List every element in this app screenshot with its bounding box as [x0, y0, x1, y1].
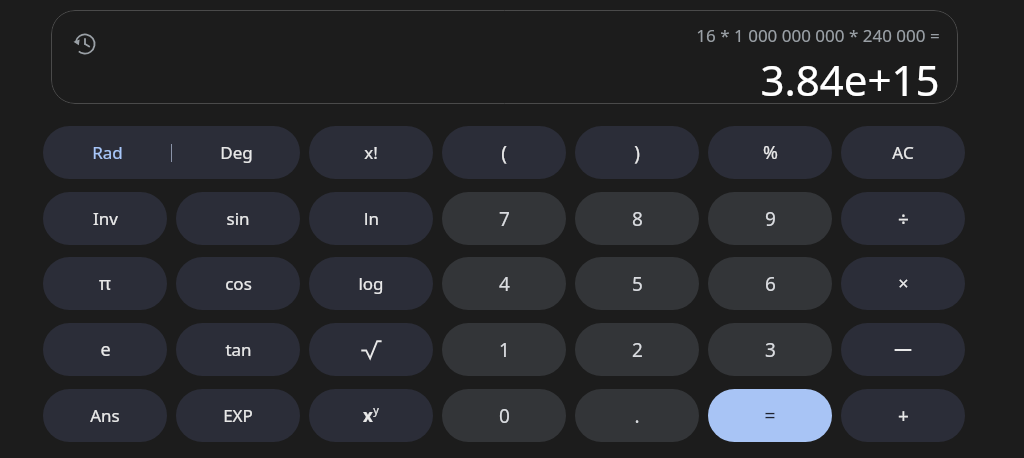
staticText: 3.84e+15 — [760, 51, 940, 104]
staticText: Ans — [90, 404, 120, 427]
button[interactable]: 0 — [442, 389, 566, 442]
button[interactable]: Rad — [43, 126, 171, 179]
staticText: 16 * 1 000 000 000 * 240 000 = — [696, 24, 940, 47]
button[interactable]: = — [708, 389, 832, 442]
staticText: log — [358, 272, 384, 295]
staticText: 4 — [499, 271, 510, 297]
button[interactable]: e — [43, 323, 167, 376]
staticText: 9 — [765, 206, 776, 232]
staticText: 8 — [632, 206, 643, 232]
button[interactable]: AC — [841, 126, 965, 179]
staticText: 0 — [499, 403, 510, 429]
button[interactable]: 6 — [708, 257, 832, 310]
button[interactable]: sin — [176, 192, 300, 245]
staticText: AC — [892, 141, 914, 164]
button[interactable]: 9 — [708, 192, 832, 245]
button[interactable]: tan — [176, 323, 300, 376]
staticText: ÷ — [898, 206, 909, 232]
button[interactable]: % — [708, 126, 832, 179]
button[interactable]: + — [841, 389, 965, 442]
button[interactable]: 5 — [575, 257, 699, 310]
staticText: Inv — [93, 207, 118, 230]
button[interactable]: log — [309, 257, 433, 310]
button[interactable] — [841, 323, 965, 376]
staticText: e — [100, 337, 111, 362]
staticText: EXP — [223, 404, 253, 427]
staticText: 3 — [765, 337, 776, 363]
staticText: × — [898, 271, 909, 296]
button[interactable]: EXP — [176, 389, 300, 442]
staticText: Rad — [92, 141, 123, 164]
staticText: ln — [364, 207, 379, 230]
staticText: y — [373, 402, 379, 417]
button[interactable]: ln — [309, 192, 433, 245]
staticText: = — [764, 402, 776, 429]
button[interactable]: ÷ — [841, 192, 965, 245]
button[interactable]: Ans — [43, 389, 167, 442]
staticText: 7 — [499, 206, 510, 232]
staticText: x — [363, 404, 373, 427]
button[interactable]: π — [43, 257, 167, 310]
button[interactable]: Deg — [172, 126, 300, 179]
staticText: . — [634, 403, 640, 429]
staticText: Deg — [220, 141, 253, 164]
button[interactable]: cos — [176, 257, 300, 310]
staticText: x! — [364, 141, 378, 164]
button[interactable]: ( — [442, 126, 566, 179]
button[interactable]: x — [309, 389, 433, 442]
button[interactable]: . — [575, 389, 699, 442]
button[interactable]: 2 — [575, 323, 699, 376]
button[interactable]: 8 — [575, 192, 699, 245]
staticText: ) — [634, 140, 640, 166]
button[interactable]: x! — [309, 126, 433, 179]
staticText: 5 — [632, 271, 643, 297]
staticText: 6 — [765, 271, 776, 297]
staticText: % — [763, 140, 778, 165]
button[interactable]: 7 — [442, 192, 566, 245]
staticText: 1 — [499, 337, 510, 363]
button[interactable]: 4 — [442, 257, 566, 310]
button[interactable]: ) — [575, 126, 699, 179]
button[interactable]: Inv — [43, 192, 167, 245]
button[interactable]: Rad — [43, 126, 300, 179]
button[interactable] — [309, 323, 433, 376]
staticText: 2 — [632, 337, 643, 363]
button[interactable]: 3 — [708, 323, 832, 376]
button[interactable]: History — [63, 22, 107, 66]
staticText: tan — [225, 338, 252, 361]
staticText: cos — [225, 272, 252, 295]
staticText: sin — [226, 207, 250, 230]
button[interactable]: 1 — [442, 323, 566, 376]
button[interactable]: × — [841, 257, 965, 310]
staticText: ( — [501, 140, 507, 166]
staticText: π — [99, 271, 111, 296]
staticText: + — [898, 403, 909, 429]
